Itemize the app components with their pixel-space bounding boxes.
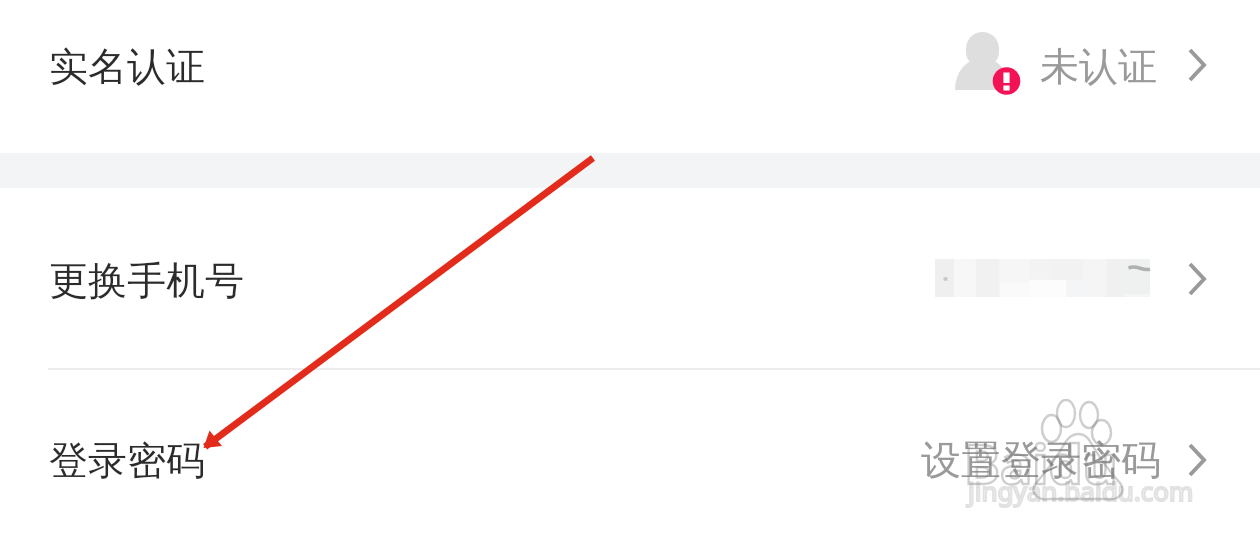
staticText: 更换手机号 xyxy=(49,256,244,305)
button[interactable]: 实名认证 xyxy=(0,0,1260,153)
staticText: Baidu xyxy=(964,426,1118,500)
staticText: 登录密码 xyxy=(49,436,205,485)
staticText: jingyan.baidu.com xyxy=(968,473,1194,508)
staticText: 实名认证 xyxy=(49,42,205,91)
staticText: 设置登录密码 xyxy=(921,435,1161,485)
staticText: 未认证 xyxy=(1040,42,1157,91)
button[interactable]: Open xyxy=(1188,48,1208,82)
button[interactable]: 登录密码 xyxy=(0,370,1260,537)
button[interactable]: Open xyxy=(1188,262,1208,296)
other: Masked phone number xyxy=(935,259,1150,297)
other: Unverified account avatar xyxy=(952,30,1022,92)
button[interactable]: 更换手机号 xyxy=(0,188,1260,369)
button[interactable]: Open xyxy=(1188,443,1208,477)
